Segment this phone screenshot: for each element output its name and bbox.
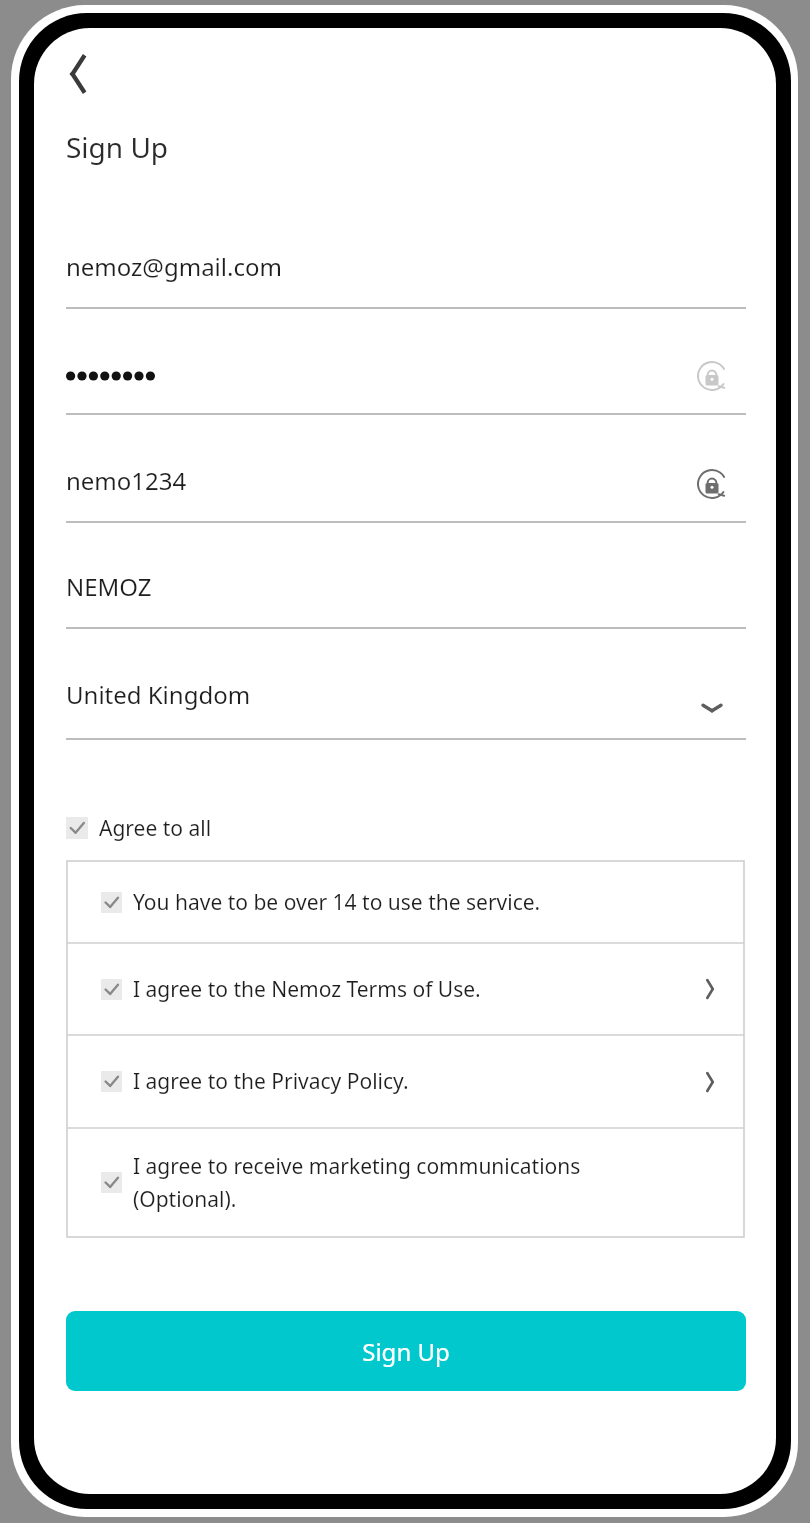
button[interactable]: Show password: [686, 350, 738, 402]
button[interactable]: You have to be over 14 to use the servic…: [67, 861, 744, 943]
staticText: You have to be over 14 to use the servic…: [133, 888, 541, 917]
button[interactable]: [66, 446, 746, 533]
button[interactable]: Sign Up: [66, 1311, 746, 1391]
button[interactable]: Agree to all: [62, 806, 282, 850]
staticText: Sign Up: [362, 1335, 450, 1368]
staticText: I agree to receive marketing communicati…: [133, 1152, 581, 1181]
staticText: Sign Up: [66, 128, 169, 166]
button[interactable]: [66, 660, 746, 750]
staticText: nemo1234: [66, 464, 187, 497]
button[interactable]: Show password: [686, 458, 738, 510]
staticText: nemoz@gmail.com: [66, 250, 282, 283]
button[interactable]: [66, 552, 746, 639]
button[interactable]: Select country: [690, 686, 734, 730]
staticText: I agree to the Nemoz Terms of Use.: [133, 975, 481, 1004]
button[interactable]: [66, 346, 746, 431]
staticText: Agree to all: [99, 814, 212, 843]
staticText: (Optional).: [133, 1185, 237, 1214]
button[interactable]: Back: [46, 42, 110, 106]
button[interactable]: I agree to the Privacy Policy.: [67, 1035, 744, 1128]
staticText: United Kingdom: [66, 678, 251, 711]
staticText: I agree to the Privacy Policy.: [133, 1067, 409, 1096]
button[interactable]: I agree to the Nemoz Terms of Use.: [67, 943, 744, 1035]
button[interactable]: [66, 232, 746, 319]
staticText: NEMOZ: [66, 570, 152, 603]
button[interactable]: I agree to receive marketing communicati…: [67, 1128, 744, 1237]
